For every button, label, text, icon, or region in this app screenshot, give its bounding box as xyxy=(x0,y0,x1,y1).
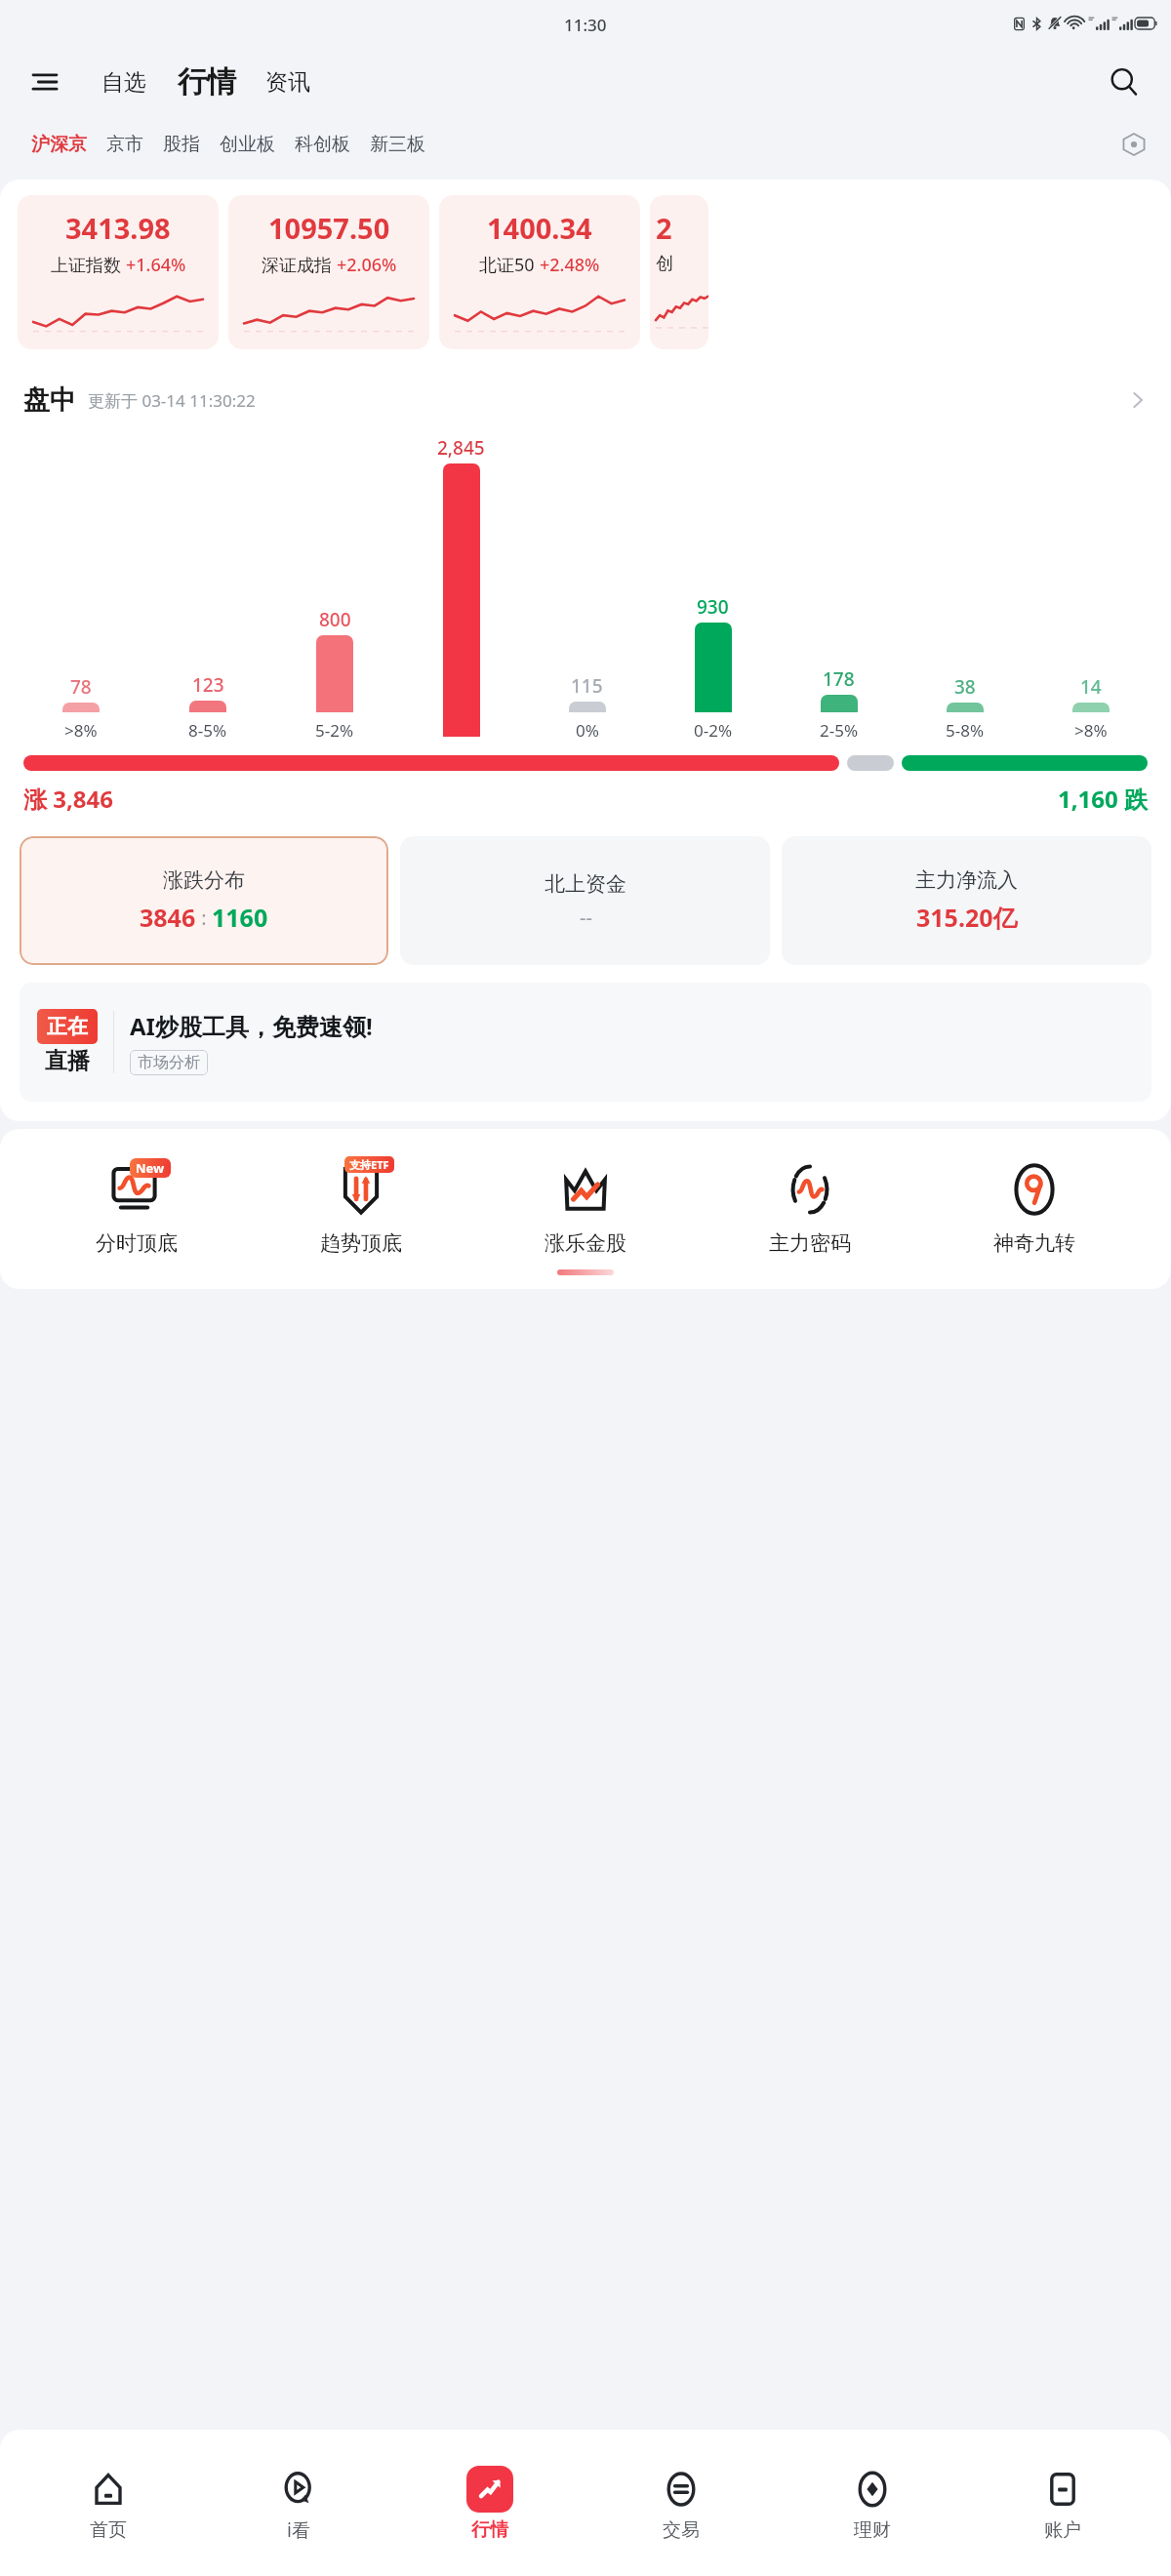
button[interactable]: 股指 xyxy=(153,127,210,162)
staticText: 深证成指 xyxy=(262,255,332,277)
staticText: 14 xyxy=(1080,674,1102,700)
button[interactable]: 交易 xyxy=(598,2464,764,2542)
staticText: 交易 xyxy=(663,2518,700,2542)
staticText: 北证50 xyxy=(479,253,535,277)
staticText: 创业板 xyxy=(220,133,275,156)
staticText: AI炒股工具，免费速领! xyxy=(130,1010,373,1042)
staticText: 2-5% xyxy=(820,719,859,742)
button[interactable]: Search xyxy=(1103,60,1146,103)
staticText: 主力净流入 xyxy=(915,867,1018,893)
button[interactable]: 北上资金 xyxy=(400,836,770,965)
staticText: 行情 xyxy=(178,63,236,101)
button[interactable]: 115 xyxy=(524,673,650,742)
staticText: 市场分析 xyxy=(138,1053,200,1072)
button[interactable]: i看 xyxy=(216,2463,382,2543)
staticText: 自选 xyxy=(101,68,146,97)
staticText: 涨乐金股 xyxy=(545,1230,626,1256)
button[interactable]: 行情 xyxy=(407,2464,573,2542)
staticText: 直播 xyxy=(45,1047,90,1075)
button[interactable]: 支持ETF xyxy=(273,1154,449,1256)
button[interactable]: 800 xyxy=(271,607,398,742)
button[interactable]: 资讯 xyxy=(256,62,320,102)
staticText: 5-8% xyxy=(946,719,985,742)
button[interactable]: 新三板 xyxy=(360,127,435,162)
staticText: 趋势顶底 xyxy=(320,1230,402,1256)
staticText: -- xyxy=(580,905,592,931)
button[interactable]: 主力净流入 xyxy=(782,836,1151,965)
staticText: 5-2% xyxy=(315,719,354,742)
staticText: 主力密码 xyxy=(769,1230,851,1256)
staticText: 科创板 xyxy=(295,133,350,156)
button[interactable]: 78 xyxy=(18,674,144,742)
staticText: 1400.34 xyxy=(487,209,592,247)
staticText: 正在 xyxy=(47,1014,88,1039)
staticText: +1.64% xyxy=(126,253,186,277)
staticText: 资讯 xyxy=(265,68,310,97)
button[interactable]: 2 xyxy=(650,195,708,349)
staticText: : xyxy=(196,905,212,931)
button[interactable]: 理财 xyxy=(789,2464,955,2542)
staticText: +2.48% xyxy=(540,253,600,277)
button[interactable]: 2,845 xyxy=(398,435,524,742)
button[interactable]: 1400.34 xyxy=(439,195,640,349)
button[interactable]: 盘中 xyxy=(0,375,1171,425)
staticText: 11:30 xyxy=(564,14,607,36)
staticText: 800 xyxy=(319,607,351,632)
staticText: 3413.98 xyxy=(65,209,171,247)
button[interactable]: Settings xyxy=(1112,123,1155,166)
staticText: 315.20亿 xyxy=(916,901,1018,934)
staticText: >8% xyxy=(1074,719,1108,742)
button[interactable]: 沪深京 xyxy=(21,127,97,162)
staticText: 首页 xyxy=(90,2518,127,2542)
staticText: 8-5% xyxy=(188,719,227,742)
staticText: 涨跌分布 xyxy=(163,867,245,893)
button[interactable]: 科创板 xyxy=(285,127,360,162)
staticText: 新三板 xyxy=(370,133,425,156)
staticText: 涨 3,846 xyxy=(23,783,113,815)
button[interactable]: 178 xyxy=(776,666,902,742)
button[interactable]: New xyxy=(49,1154,224,1256)
staticText: 创 xyxy=(656,253,673,275)
button[interactable]: 10957.50 xyxy=(228,195,429,349)
button[interactable]: 14 xyxy=(1028,674,1153,742)
button[interactable]: 账户 xyxy=(980,2464,1146,2542)
staticText: 沪深京 xyxy=(31,133,87,156)
staticText: 2 xyxy=(656,209,672,247)
staticText: 0% xyxy=(576,719,599,742)
staticText: 10957.50 xyxy=(268,209,390,247)
staticText: 3846 xyxy=(140,901,196,934)
button[interactable]: 自选 xyxy=(90,62,158,102)
staticText: New xyxy=(136,1159,165,1177)
staticText: 38 xyxy=(954,674,976,700)
staticText: 1160 xyxy=(212,901,268,934)
button[interactable]: 3413.98 xyxy=(18,195,219,349)
button[interactable]: Menu xyxy=(25,62,64,101)
button[interactable]: 行情 xyxy=(168,61,246,102)
staticText: 更新于 03-14 11:30:22 xyxy=(88,389,256,412)
staticText: 78 xyxy=(70,674,92,700)
button[interactable]: 123 xyxy=(144,672,271,742)
button[interactable]: 神奇九转 xyxy=(947,1154,1122,1256)
staticText: 115 xyxy=(571,673,603,699)
staticText: 1,160 跌 xyxy=(1058,783,1148,815)
button[interactable]: 涨乐金股 xyxy=(498,1154,673,1256)
staticText: +2.06% xyxy=(337,253,397,277)
button[interactable]: 京市 xyxy=(97,127,153,162)
button[interactable]: 930 xyxy=(650,594,776,742)
staticText: 行情 xyxy=(471,2518,508,2542)
staticText: 上证指数 xyxy=(51,255,121,277)
staticText: 178 xyxy=(823,666,855,692)
button[interactable]: 正在 xyxy=(20,983,1151,1102)
button[interactable]: 涨跌分布 xyxy=(20,836,388,965)
staticText: 2,845 xyxy=(437,435,485,461)
staticText: 北上资金 xyxy=(545,871,626,897)
button[interactable]: 创业板 xyxy=(210,127,285,162)
staticText: 神奇九转 xyxy=(993,1230,1075,1256)
staticText: 0-2% xyxy=(694,719,733,742)
button[interactable]: 38 xyxy=(902,674,1028,742)
staticText: >8% xyxy=(64,719,98,742)
staticText: 123 xyxy=(192,672,224,698)
button[interactable]: 主力密码 xyxy=(722,1154,898,1256)
staticText: 930 xyxy=(697,594,729,620)
button[interactable]: 首页 xyxy=(25,2464,191,2542)
